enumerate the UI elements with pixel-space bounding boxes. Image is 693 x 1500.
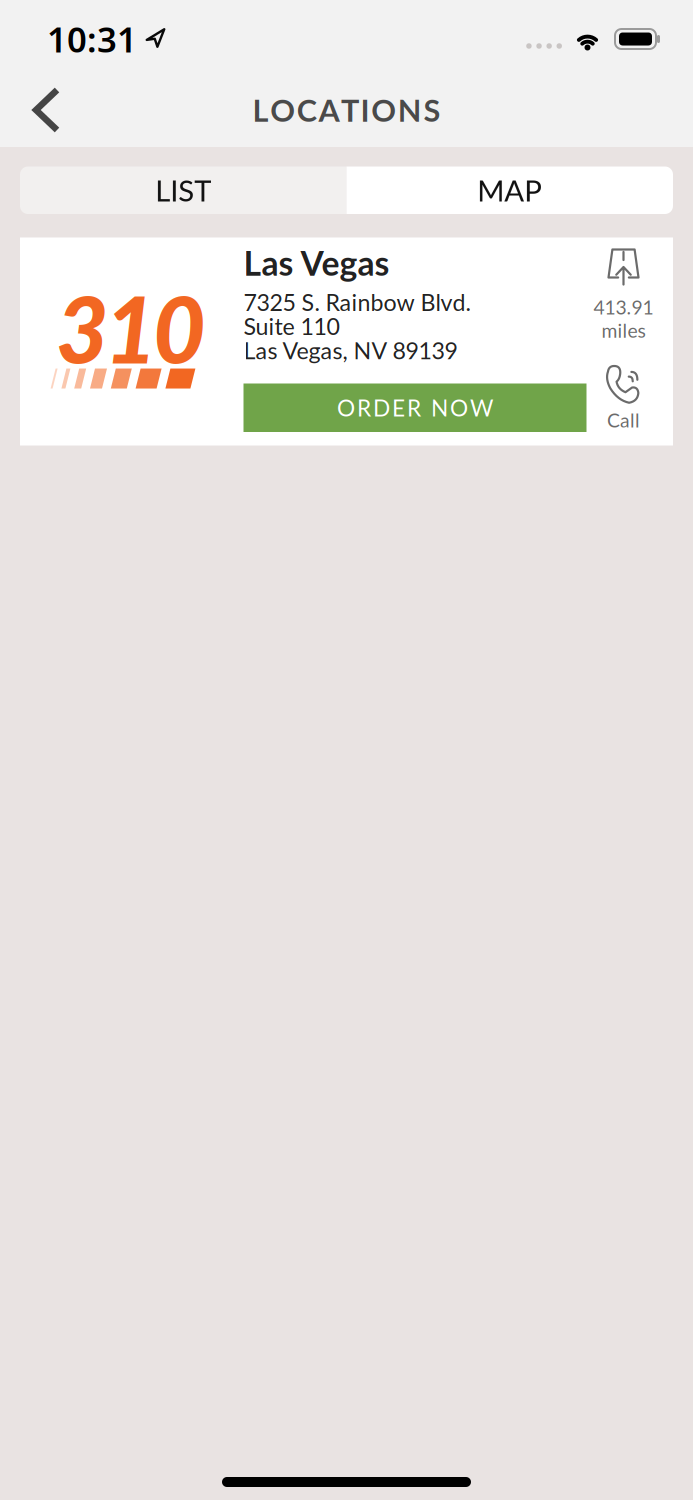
- staticText: MAP: [477, 173, 542, 208]
- staticText: N: [431, 394, 448, 421]
- button[interactable]: MAP: [346, 166, 673, 214]
- staticText: I: [361, 92, 370, 128]
- button[interactable]: O: [243, 383, 586, 432]
- staticText: C: [297, 92, 317, 128]
- staticText: 10:31: [47, 16, 137, 62]
- staticText: O: [337, 394, 355, 421]
- staticText: Suite 110: [243, 312, 339, 340]
- staticText: L: [253, 92, 269, 128]
- staticText: miles: [601, 319, 645, 342]
- staticText: O: [270, 92, 295, 128]
- staticText: Las Vegas, NV 89139: [243, 336, 457, 364]
- button[interactable]: LIST: [20, 166, 346, 214]
- button[interactable]: Call: [607, 365, 640, 431]
- staticText: LIST: [155, 173, 211, 208]
- staticText: 413.91: [593, 295, 653, 319]
- staticText: 1: [104, 274, 157, 383]
- staticText: O: [371, 92, 396, 128]
- staticText: O: [450, 394, 468, 421]
- staticText: N: [398, 92, 422, 128]
- button[interactable]: Back: [0, 90, 81, 130]
- staticText: D: [373, 394, 390, 421]
- staticText: E: [392, 394, 405, 421]
- staticText: T: [341, 92, 359, 128]
- staticText: 7325 S. Rainbow Blvd.: [243, 288, 470, 316]
- staticText: 3: [56, 274, 109, 383]
- staticText: Call: [607, 408, 640, 431]
- staticText: R: [357, 394, 371, 421]
- staticText: W: [470, 394, 493, 421]
- staticText: A: [318, 92, 339, 128]
- staticText: S: [423, 92, 440, 128]
- button[interactable]: Directions, 413.91 miles: [593, 237, 653, 342]
- staticText: Las Vegas: [243, 242, 389, 283]
- staticText: 0: [153, 274, 206, 383]
- staticText: R: [407, 394, 421, 421]
